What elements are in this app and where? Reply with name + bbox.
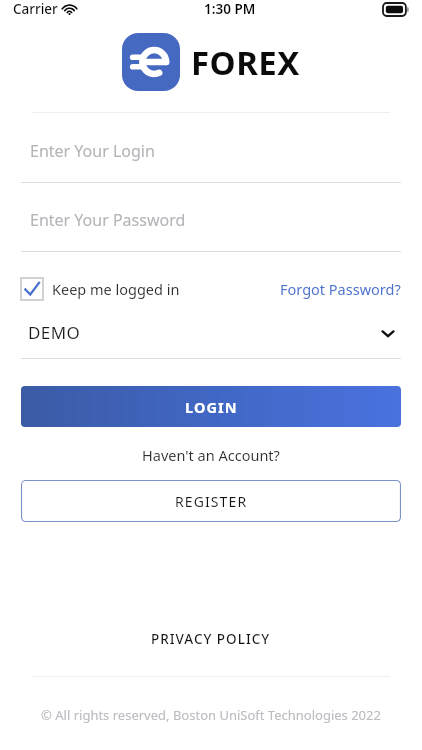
staticText: Keep me logged in [52, 279, 180, 299]
staticText: Enter Your Password [30, 209, 186, 231]
button[interactable]: REGISTER [21, 480, 401, 522]
staticText: 1:30 PM [204, 0, 256, 18]
staticText: FOREX [191, 40, 300, 85]
staticText: Forgot Password? [280, 279, 401, 299]
staticText: © All rights reserved, Boston UniSoft Te… [0, 706, 422, 724]
staticText: DEMO [28, 321, 81, 344]
staticText: Carrier [13, 0, 58, 18]
staticText: REGISTER [175, 492, 248, 511]
other: Wi-Fi signal [62, 3, 77, 15]
button[interactable]: Forgot Password? [280, 275, 401, 303]
button[interactable]: DEMO [0, 321, 422, 359]
staticText: LOGIN [185, 397, 238, 417]
staticText: Haven't an Account? [0, 445, 422, 465]
button[interactable]: LOGIN [21, 386, 401, 427]
button[interactable]: PRIVACY POLICY [0, 624, 422, 654]
staticText: Enter Your Login [30, 140, 155, 162]
other: Battery full [383, 3, 409, 16]
other: eForex logo [122, 33, 180, 91]
button[interactable]: Enter Your Login [0, 140, 422, 183]
staticText: PRIVACY POLICY [151, 630, 271, 648]
other: Keep me logged in checkbox [21, 278, 43, 300]
button[interactable]: Keep me logged in checkbox [21, 274, 180, 304]
button[interactable]: Enter Your Password [0, 209, 422, 252]
